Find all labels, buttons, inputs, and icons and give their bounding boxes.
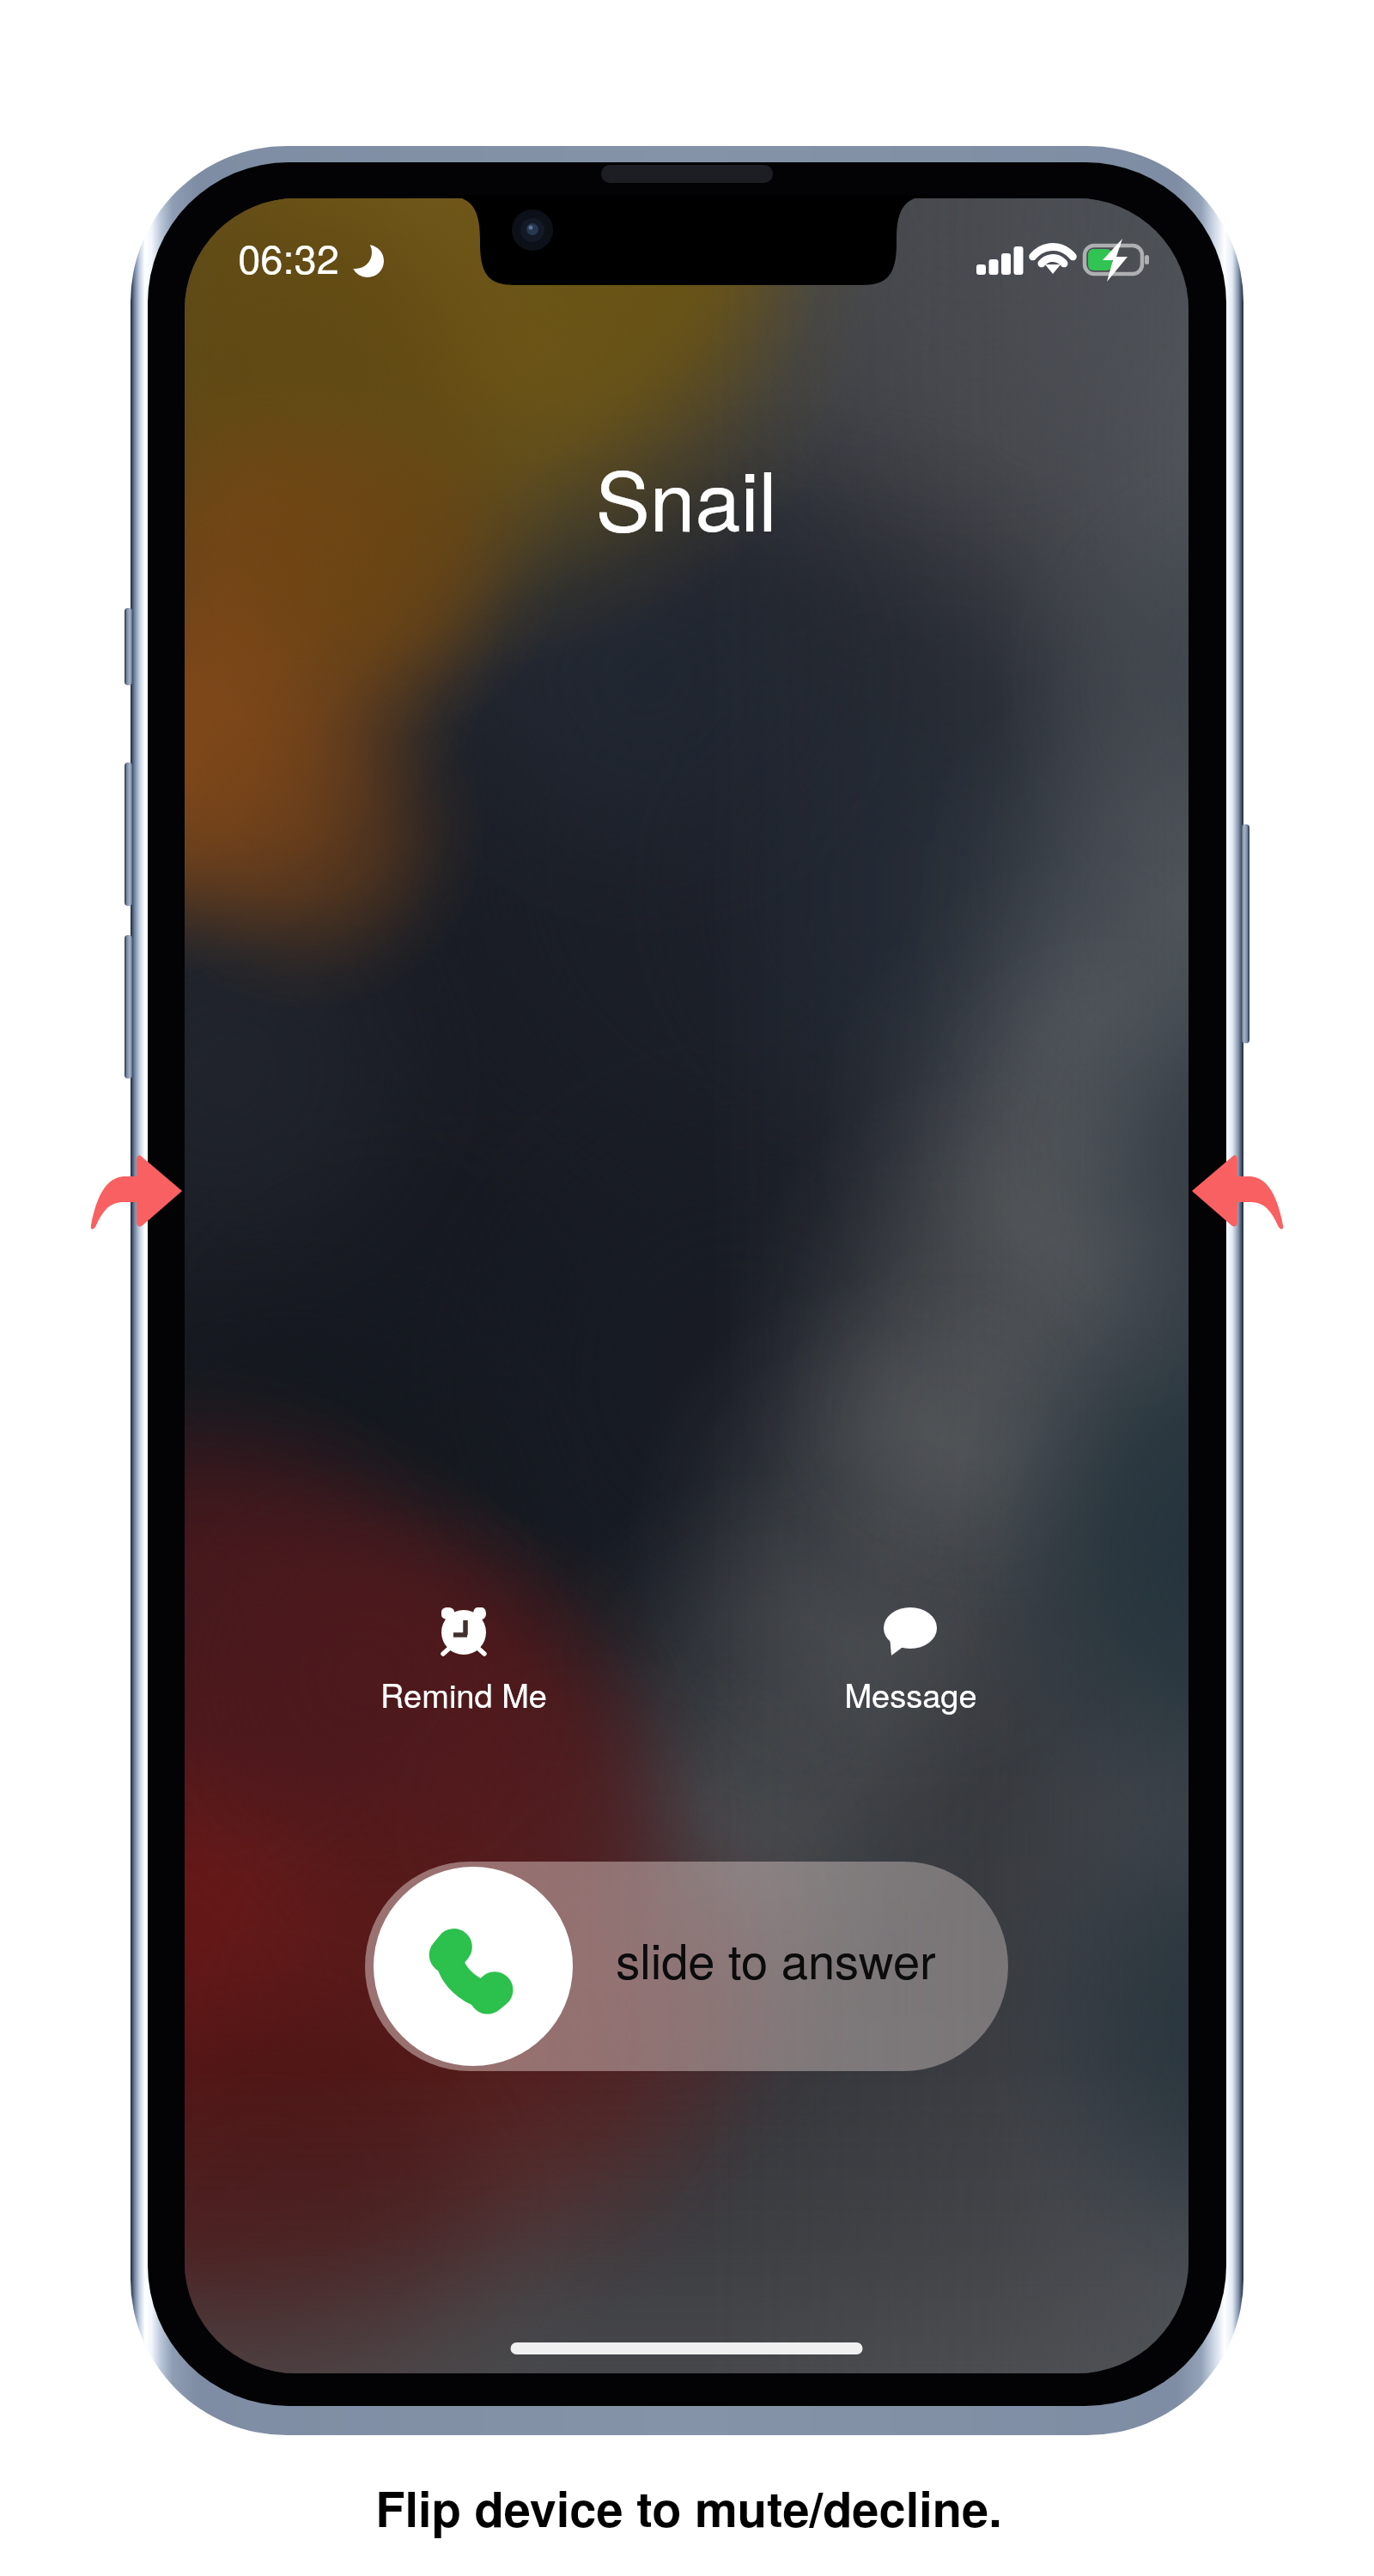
- staticText: slide to answer: [616, 1924, 936, 1993]
- staticText: 06:32: [238, 228, 339, 285]
- staticText: Flip device to mute/decline.: [375, 2473, 1002, 2542]
- staticText: Snail: [595, 438, 777, 555]
- button[interactable]: [773, 1594, 1048, 1727]
- button[interactable]: [326, 1594, 601, 1727]
- staticText: Remind Me: [380, 1670, 547, 1716]
- staticText: Message: [844, 1670, 977, 1716]
